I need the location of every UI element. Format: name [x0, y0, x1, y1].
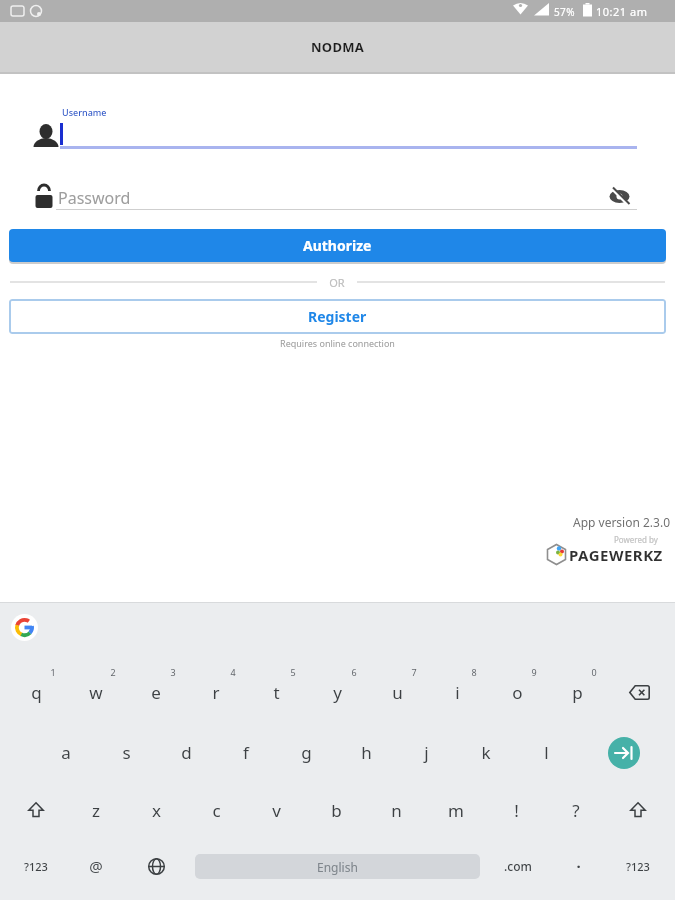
button[interactable]: [309, 786, 363, 834]
staticText: 2: [110, 666, 116, 678]
staticText: p: [572, 681, 583, 704]
staticText: g: [301, 741, 312, 764]
staticText: Username: [62, 106, 107, 118]
staticText: ·: [576, 856, 581, 876]
button[interactable]: [611, 786, 665, 834]
staticText: m: [448, 799, 464, 822]
staticText: b: [331, 799, 342, 822]
button[interactable]: [519, 728, 573, 776]
staticText: s: [122, 741, 131, 764]
staticText: English: [317, 859, 358, 875]
button[interactable]: [129, 668, 183, 716]
staticText: z: [92, 799, 100, 822]
staticText: NODMA: [311, 38, 365, 56]
staticText: v: [272, 799, 281, 822]
staticText: w: [89, 681, 103, 704]
staticText: r: [212, 681, 220, 704]
button[interactable]: [310, 668, 364, 716]
button[interactable]: [279, 728, 333, 776]
button[interactable]: [189, 668, 243, 716]
button[interactable]: [611, 842, 665, 890]
button[interactable]: [490, 668, 544, 716]
button[interactable]: Register: [9, 299, 666, 334]
staticText: ?: [572, 799, 580, 822]
staticText: Password: [58, 187, 131, 209]
staticText: a: [61, 741, 71, 764]
staticText: 3: [170, 666, 176, 678]
staticText: 6: [351, 666, 357, 678]
staticText: n: [391, 799, 402, 822]
button[interactable]: [429, 786, 483, 834]
staticText: f: [243, 741, 249, 764]
staticText: l: [544, 741, 549, 764]
button[interactable]: [622, 678, 656, 706]
button[interactable]: [249, 786, 303, 834]
staticText: !: [514, 799, 519, 822]
button[interactable]: [551, 842, 605, 890]
staticText: ?123: [24, 859, 48, 874]
staticText: Powered by: [614, 534, 658, 545]
staticText: c: [212, 799, 221, 822]
staticText: 1: [50, 666, 56, 678]
button[interactable]: [69, 786, 123, 834]
button[interactable]: [430, 668, 484, 716]
button[interactable]: [489, 786, 543, 834]
button[interactable]: [459, 728, 513, 776]
button[interactable]: [99, 728, 153, 776]
button[interactable]: [549, 786, 603, 834]
button[interactable]: [69, 842, 123, 890]
button[interactable]: [9, 786, 63, 834]
button[interactable]: [11, 614, 38, 641]
staticText: Register: [308, 307, 367, 326]
staticText: d: [181, 741, 192, 764]
button[interactable]: [159, 728, 213, 776]
staticText: e: [151, 681, 161, 704]
staticText: o: [512, 681, 523, 704]
button[interactable]: [9, 842, 63, 890]
staticText: @: [89, 856, 103, 876]
button[interactable]: [249, 668, 303, 716]
button[interactable]: [189, 786, 243, 834]
staticText: OR: [329, 275, 345, 290]
staticText: 8: [471, 666, 477, 678]
button[interactable]: [9, 668, 63, 716]
staticText: Authorize: [303, 236, 372, 255]
staticText: 10:21 am: [596, 4, 648, 19]
button[interactable]: [339, 728, 393, 776]
button[interactable]: [69, 668, 123, 716]
button[interactable]: [142, 852, 170, 880]
staticText: h: [361, 741, 372, 764]
staticText: Requires online connection: [280, 337, 395, 349]
staticText: 5: [290, 666, 296, 678]
staticText: App version 2.3.0: [573, 514, 671, 530]
staticText: 4: [230, 666, 236, 678]
staticText: t: [273, 681, 280, 704]
button[interactable]: [129, 786, 183, 834]
button[interactable]: Authorize: [9, 229, 666, 262]
button[interactable]: [399, 728, 453, 776]
staticText: i: [455, 681, 460, 704]
staticText: k: [481, 741, 491, 764]
button[interactable]: [370, 668, 424, 716]
button[interactable]: [491, 842, 545, 890]
staticText: 9: [531, 666, 537, 678]
staticText: y: [333, 681, 342, 704]
staticText: 0: [591, 666, 597, 678]
staticText: q: [31, 681, 42, 704]
staticText: 57%: [554, 5, 575, 19]
button[interactable]: [369, 786, 423, 834]
staticText: PAGEWERKZ: [569, 545, 663, 565]
button[interactable]: [608, 737, 640, 769]
staticText: j: [424, 741, 429, 764]
staticText: x: [152, 799, 161, 822]
button[interactable]: [550, 668, 604, 716]
staticText: 7: [411, 666, 417, 678]
staticText: u: [392, 681, 403, 704]
button[interactable]: English: [195, 854, 480, 879]
staticText: ?123: [626, 859, 650, 874]
staticText: .com: [504, 858, 532, 874]
button[interactable]: [219, 728, 273, 776]
button[interactable]: [39, 728, 93, 776]
